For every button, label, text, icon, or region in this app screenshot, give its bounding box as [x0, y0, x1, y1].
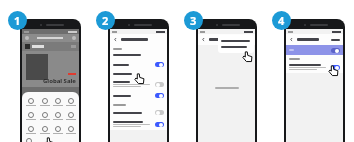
button[interactable]: Step 1: [8, 11, 27, 30]
button[interactable]: Back: [289, 37, 294, 42]
button[interactable]: [51, 126, 64, 134]
button[interactable]: [64, 126, 77, 134]
button[interactable]: [221, 40, 251, 42]
button[interactable]: Toggle: [289, 64, 340, 70]
other: Tap here: [242, 51, 253, 62]
button[interactable]: Toggle: [155, 62, 164, 67]
button[interactable]: Toggle: [155, 93, 164, 98]
button[interactable]: Toggle: [113, 62, 164, 67]
button[interactable]: Toggle: [155, 82, 164, 87]
button[interactable]: [24, 126, 38, 134]
button[interactable]: [38, 112, 51, 120]
button[interactable]: Toggle: [331, 65, 340, 70]
button[interactable]: [24, 112, 38, 120]
button[interactable]: [38, 98, 51, 106]
button[interactable]: Toggle: [113, 81, 164, 87]
button[interactable]: Toggle: [155, 122, 164, 127]
button[interactable]: [64, 112, 77, 120]
button[interactable]: [51, 112, 64, 120]
staticText: 2: [102, 13, 109, 28]
button[interactable]: [51, 98, 64, 106]
button[interactable]: Step 4: [272, 11, 291, 30]
button[interactable]: Step 2: [96, 11, 115, 30]
button[interactable]: Toggle: [113, 93, 164, 98]
button[interactable]: [24, 98, 38, 106]
button[interactable]: [113, 54, 164, 56]
button[interactable]: Back: [201, 37, 206, 42]
button[interactable]: [331, 39, 340, 41]
button[interactable]: [221, 46, 251, 48]
button[interactable]: [113, 73, 164, 75]
staticText: 1: [14, 13, 21, 28]
staticText: 3: [190, 13, 197, 28]
staticText: 4: [278, 13, 285, 28]
other: Tap here: [44, 137, 55, 142]
button[interactable]: [38, 126, 51, 134]
other: Tap here: [134, 73, 145, 84]
button[interactable]: [289, 45, 340, 55]
button[interactable]: Toggle: [155, 110, 164, 115]
button[interactable]: Toggle: [113, 110, 164, 115]
button[interactable]: Back: [113, 37, 118, 42]
button[interactable]: Step 3: [184, 11, 203, 30]
button[interactable]: [64, 98, 77, 106]
button[interactable]: Toggle: [113, 121, 164, 127]
staticText: Global Sale: [43, 77, 76, 85]
other: Tap here: [328, 65, 339, 76]
